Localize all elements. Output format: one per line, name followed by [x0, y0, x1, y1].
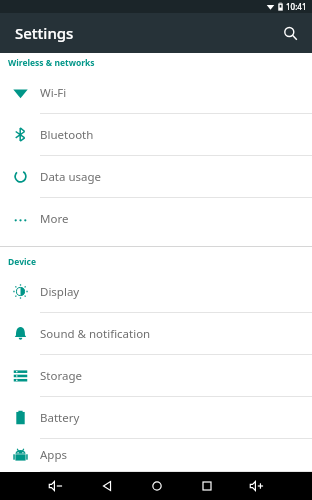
button[interactable]: Battery: [0, 397, 312, 439]
staticText: Sound & notification: [40, 326, 151, 342]
button[interactable]: Sound & notification: [0, 313, 312, 355]
staticText: Display: [40, 284, 80, 300]
button[interactable]: Storage: [0, 355, 312, 397]
button[interactable]: Data usage: [0, 156, 312, 198]
button[interactable]: More: [0, 198, 312, 240]
staticText: Bluetooth: [40, 127, 94, 143]
staticText: Storage: [40, 368, 82, 384]
button[interactable]: Home: [132, 472, 182, 500]
button[interactable]: Apps: [0, 439, 312, 472]
staticText: 10:41: [286, 1, 307, 12]
staticText: Wireless & networks: [8, 57, 95, 69]
button[interactable]: Volume up: [232, 472, 282, 500]
staticText: Data usage: [40, 169, 102, 185]
button[interactable]: Back: [81, 472, 132, 500]
staticText: More: [40, 211, 69, 227]
staticText: Wi-Fi: [40, 85, 67, 101]
staticText: Settings: [15, 23, 74, 43]
button[interactable]: Recent apps: [182, 472, 232, 500]
staticText: Device: [8, 256, 36, 268]
button[interactable]: Wi-Fi: [0, 72, 312, 114]
button[interactable]: Bluetooth: [0, 114, 312, 156]
staticText: Apps: [40, 447, 68, 463]
button[interactable]: Volume down: [30, 472, 81, 500]
button[interactable]: Search: [274, 17, 306, 49]
button[interactable]: Display: [0, 271, 312, 313]
staticText: Battery: [40, 410, 80, 426]
